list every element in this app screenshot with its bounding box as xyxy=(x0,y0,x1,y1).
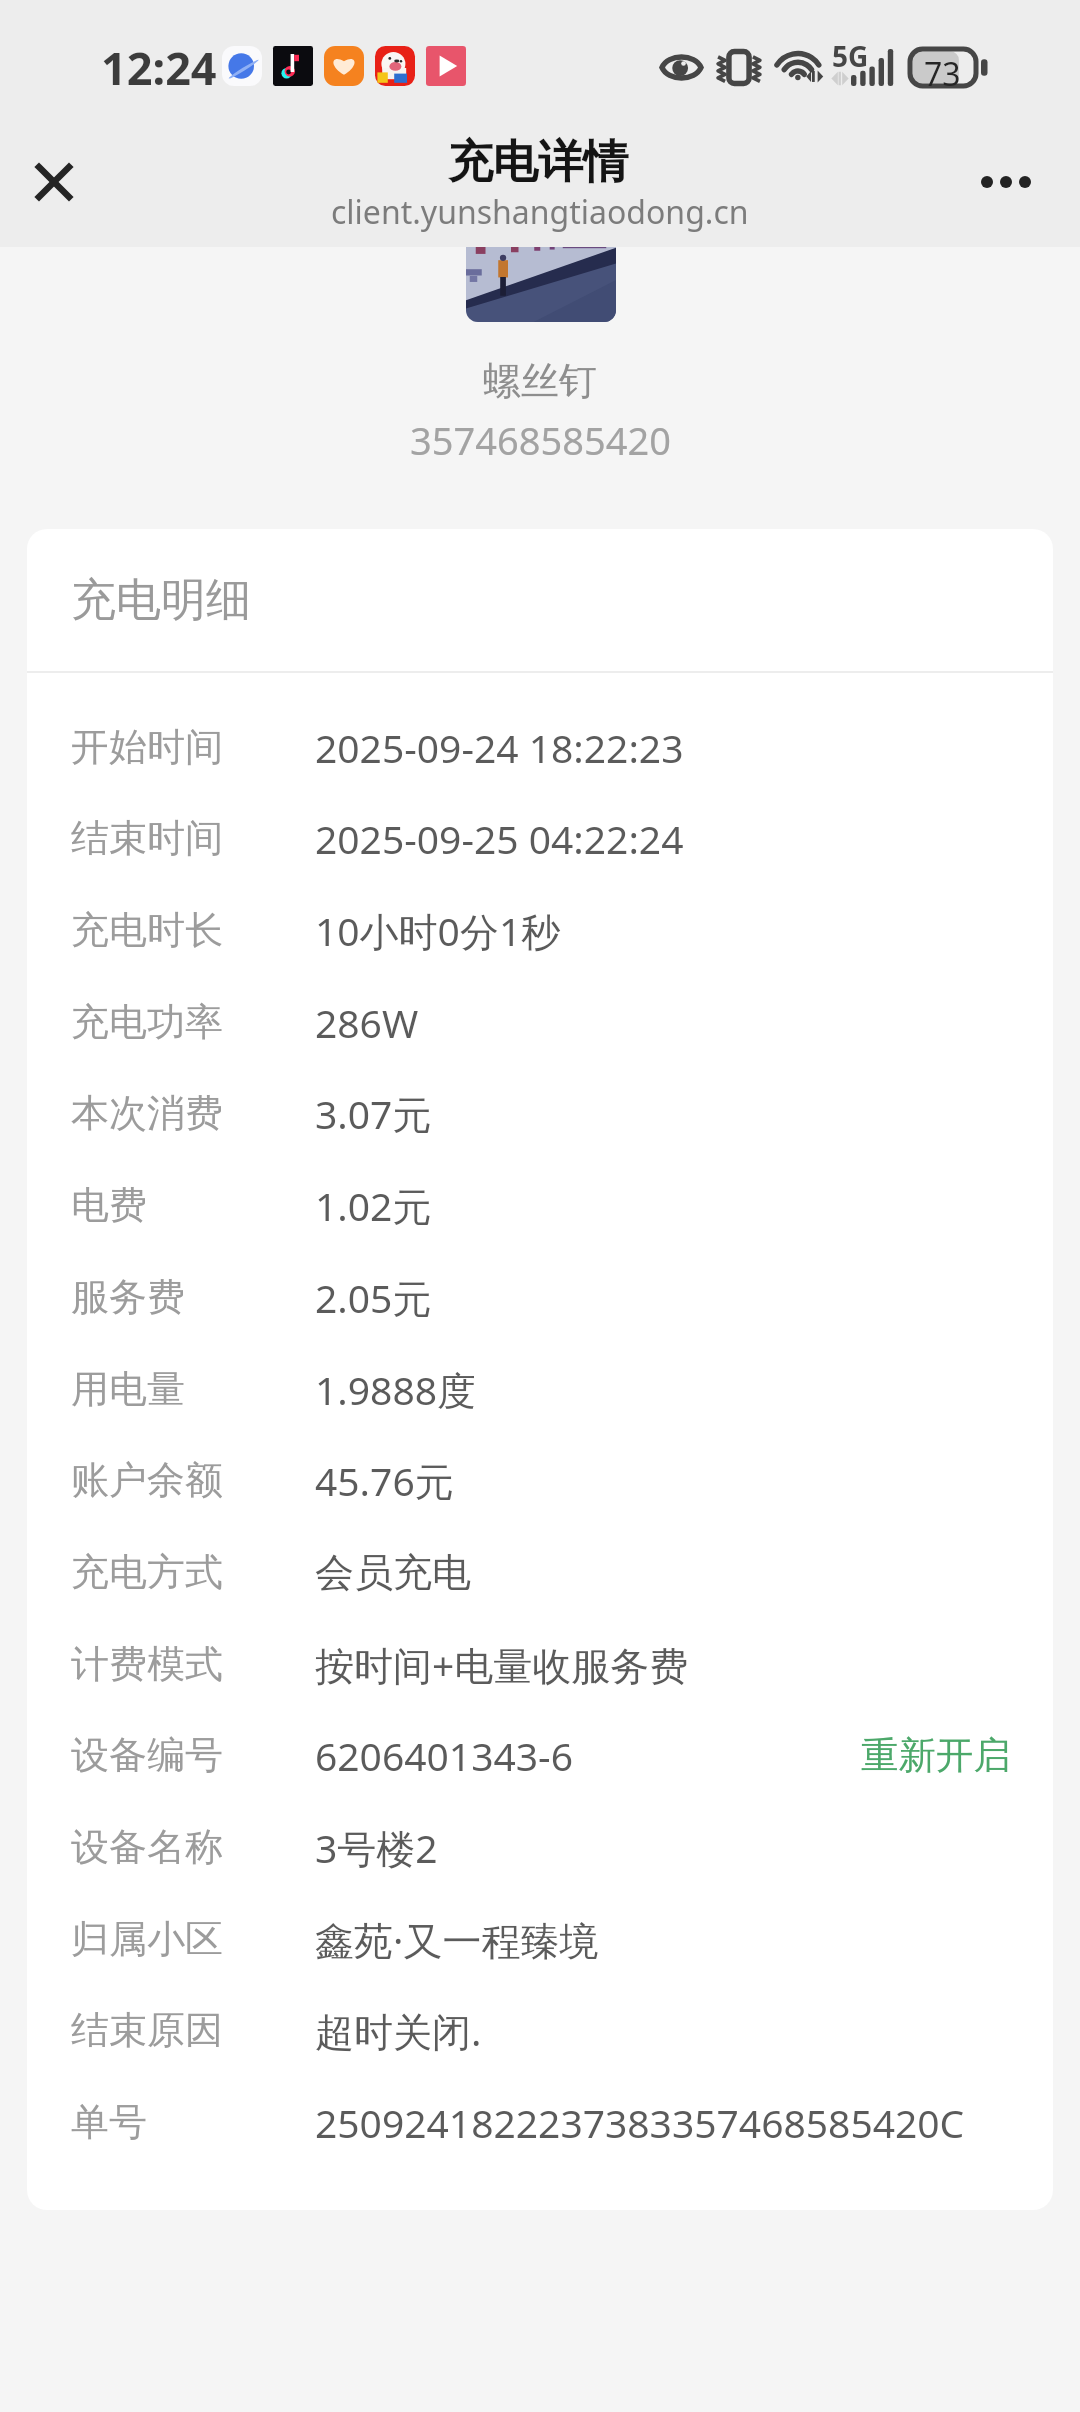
staticText: 超时关闭. xyxy=(315,2004,482,2057)
button[interactable]: Close xyxy=(6,134,102,230)
button[interactable]: 设备编号 xyxy=(27,1709,1053,1801)
button[interactable]: 充电方式 xyxy=(27,1526,1053,1618)
staticText: 服务费 xyxy=(71,1273,315,1321)
staticText: 286W xyxy=(315,996,419,1049)
button[interactable]: 归属小区 xyxy=(27,1893,1053,1985)
staticText: 充电明细 xyxy=(71,572,251,629)
button[interactable]: 结束原因 xyxy=(27,1984,1053,2076)
staticText: 电费 xyxy=(71,1181,315,1229)
staticText: 2025-09-25 04:22:24 xyxy=(315,812,684,865)
button[interactable]: 计费模式 xyxy=(27,1618,1053,1710)
staticText: 会员充电 xyxy=(315,1548,471,1597)
staticText: 1.02元 xyxy=(315,1179,432,1232)
staticText: 1.9888度 xyxy=(315,1363,476,1416)
staticText: 设备编号 xyxy=(71,1731,315,1779)
staticText: 螺丝钉 xyxy=(483,357,597,405)
staticText: 5G xyxy=(832,37,869,75)
staticText: 10小时0分1秒 xyxy=(315,904,561,957)
staticText: 按时间+电量收服务费 xyxy=(315,1638,689,1691)
button[interactable]: 充电时长 xyxy=(27,884,1053,976)
button[interactable]: 结束时间 xyxy=(27,792,1053,884)
staticText: 12:24 xyxy=(101,37,217,98)
staticText: 单号 xyxy=(71,2098,315,2146)
staticText: 结束原因 xyxy=(71,2006,315,2054)
staticText: 2509241822237383357468585420C xyxy=(315,2096,965,2149)
button[interactable]: 用电量 xyxy=(27,1343,1053,1435)
button[interactable]: 重新开启 xyxy=(857,1709,1053,1801)
button[interactable]: More options xyxy=(957,134,1053,230)
button[interactable]: 本次消费 xyxy=(27,1067,1053,1159)
staticText: 用电量 xyxy=(71,1365,315,1413)
staticText: 结束时间 xyxy=(71,814,315,862)
staticText: 本次消费 xyxy=(71,1089,315,1137)
button[interactable]: 设备名称 xyxy=(27,1801,1053,1893)
staticText: 账户余额 xyxy=(71,1456,315,1504)
staticText: 计费模式 xyxy=(71,1640,315,1688)
button[interactable]: 账户余额 xyxy=(27,1434,1053,1526)
staticText: 归属小区 xyxy=(71,1915,315,1963)
button[interactable]: 开始时间 xyxy=(27,701,1053,793)
staticText: 充电功率 xyxy=(71,998,315,1046)
staticText: 鑫苑·又一程臻境 xyxy=(315,1913,599,1966)
staticText: 开始时间 xyxy=(71,723,315,771)
staticText: 重新开启 xyxy=(861,1732,1011,1779)
staticText: 3.07元 xyxy=(315,1087,432,1140)
staticText: 充电时长 xyxy=(71,906,315,954)
staticText: 45.76元 xyxy=(315,1454,454,1507)
staticText: 357468585420 xyxy=(410,414,671,466)
button[interactable]: 服务费 xyxy=(27,1251,1053,1343)
button[interactable]: 充电功率 xyxy=(27,976,1053,1068)
button[interactable]: 单号 xyxy=(27,2076,1053,2168)
staticText: 设备名称 xyxy=(71,1823,315,1871)
staticText: 3号楼2 xyxy=(315,1821,438,1874)
staticText: 73 xyxy=(924,52,961,90)
staticText: 6206401343-6 xyxy=(315,1729,573,1782)
staticText: 充电详情 xyxy=(448,134,628,191)
staticText: 充电方式 xyxy=(71,1548,315,1596)
button[interactable]: 电费 xyxy=(27,1159,1053,1251)
staticText: client.yunshangtiaodong.cn xyxy=(331,190,749,234)
staticText: 2025-09-24 18:22:23 xyxy=(315,721,684,774)
staticText: 2.05元 xyxy=(315,1271,432,1324)
